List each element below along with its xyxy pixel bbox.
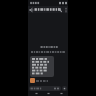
button[interactable]: Recents [56,91,66,96]
button[interactable]: Back [31,91,41,96]
button[interactable] [29,86,61,91]
button[interactable] [30,56,54,77]
button[interactable]: Contact avatar [30,78,35,83]
button[interactable]: Call [57,6,63,13]
button[interactable]: More options [63,6,68,13]
button[interactable]: Home [43,91,53,96]
button[interactable]: Send [62,86,67,91]
button[interactable] [34,6,57,13]
button[interactable]: Back [28,6,34,13]
